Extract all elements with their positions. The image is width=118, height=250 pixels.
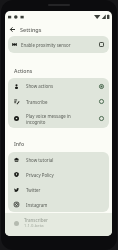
staticText: Transcriber	[24, 217, 48, 223]
staticText: Info	[14, 140, 25, 147]
staticText: Privacy Policy	[26, 172, 54, 178]
staticText: Settings	[20, 26, 42, 33]
staticText: Actions	[14, 67, 33, 74]
button[interactable]: Instagram	[8, 197, 109, 212]
button[interactable]: Enable proximity sensor	[8, 36, 109, 53]
button[interactable]: Back	[6, 23, 18, 35]
button[interactable]: Privacy Policy	[8, 167, 109, 182]
staticText: Show actions	[26, 83, 93, 89]
button[interactable]: Play voice message in incognito	[8, 109, 109, 128]
staticText: 1.1.0-beta	[24, 223, 44, 229]
button[interactable]: Show actions	[8, 78, 109, 94]
staticText: Twitter	[26, 187, 41, 193]
staticText: Enable proximity sensor	[21, 42, 71, 48]
staticText: Show tutorial	[26, 157, 54, 163]
staticText: Play voice message in incognito	[26, 113, 93, 125]
button[interactable]: Twitter	[8, 182, 109, 197]
button[interactable]: Transcribe	[8, 94, 109, 109]
button[interactable]: Show tutorial	[8, 152, 109, 167]
staticText: Transcribe	[26, 99, 93, 105]
staticText: Instagram	[26, 202, 48, 208]
